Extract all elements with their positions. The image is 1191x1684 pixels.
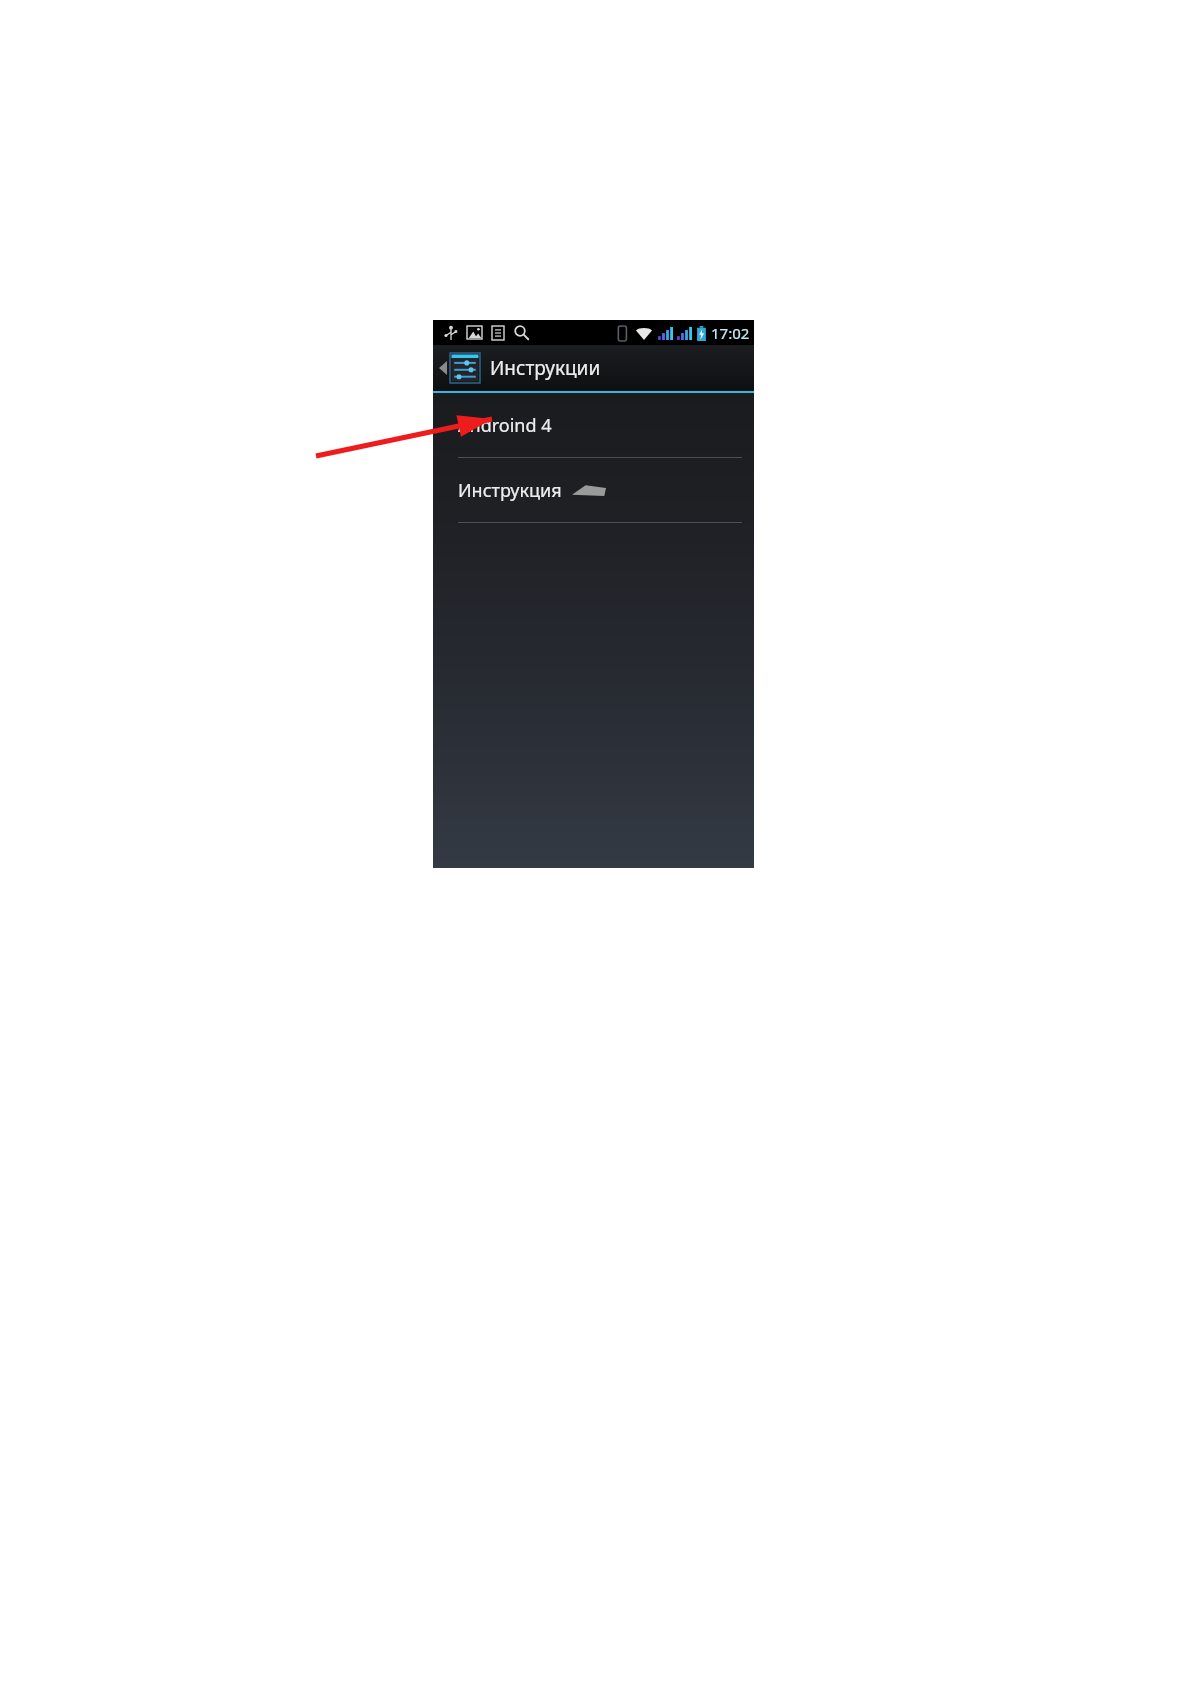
staticText: 17:02 bbox=[711, 323, 750, 343]
staticText: Инструкция bbox=[458, 478, 562, 503]
staticText: Androind 4 bbox=[458, 413, 552, 438]
button[interactable]: Инструкция bbox=[433, 458, 754, 522]
button[interactable]: Back bbox=[433, 353, 611, 383]
staticText: Инструкции bbox=[490, 355, 601, 381]
button[interactable]: Androind 4 bbox=[433, 393, 754, 457]
other: Back bbox=[439, 361, 447, 375]
